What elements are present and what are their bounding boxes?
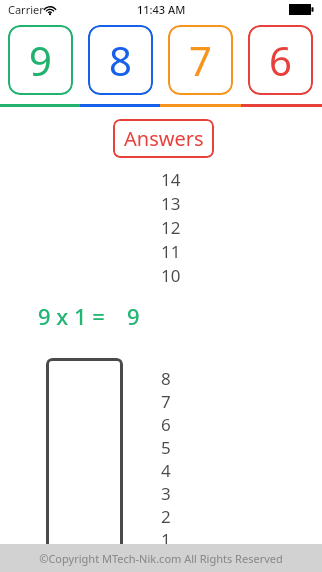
- staticText: 8: [161, 367, 171, 390]
- staticText: 4: [161, 459, 171, 482]
- staticText: 3: [161, 482, 171, 505]
- button[interactable]: 9: [8, 25, 73, 95]
- staticText: 5: [161, 436, 171, 459]
- staticText: 12: [161, 216, 181, 239]
- button[interactable]: [46, 358, 123, 556]
- staticText: 9: [127, 301, 140, 331]
- staticText: 11:43 AM: [137, 2, 186, 17]
- staticText: 9: [29, 33, 52, 87]
- staticText: Carrier: [8, 2, 44, 17]
- button[interactable]: 6: [248, 25, 313, 95]
- staticText: 7: [161, 390, 171, 413]
- button[interactable]: 7: [168, 25, 233, 95]
- staticText: 8: [109, 33, 132, 87]
- staticText: 10: [161, 264, 181, 287]
- staticText: ©Copyright MTech-Nik.com All Rights Rese…: [39, 551, 283, 566]
- staticText: 1: [161, 528, 171, 551]
- staticText: 13: [161, 192, 181, 215]
- staticText: 11: [161, 240, 181, 263]
- staticText: 6: [269, 33, 292, 87]
- staticText: 6: [161, 413, 171, 436]
- staticText: 14: [161, 168, 181, 191]
- button[interactable]: 8: [88, 25, 153, 95]
- staticText: 7: [189, 33, 212, 87]
- staticText: 9 x 1 =: [38, 301, 105, 331]
- button[interactable]: Answers: [113, 119, 214, 158]
- staticText: 2: [161, 505, 171, 528]
- staticText: Answers: [124, 125, 204, 152]
